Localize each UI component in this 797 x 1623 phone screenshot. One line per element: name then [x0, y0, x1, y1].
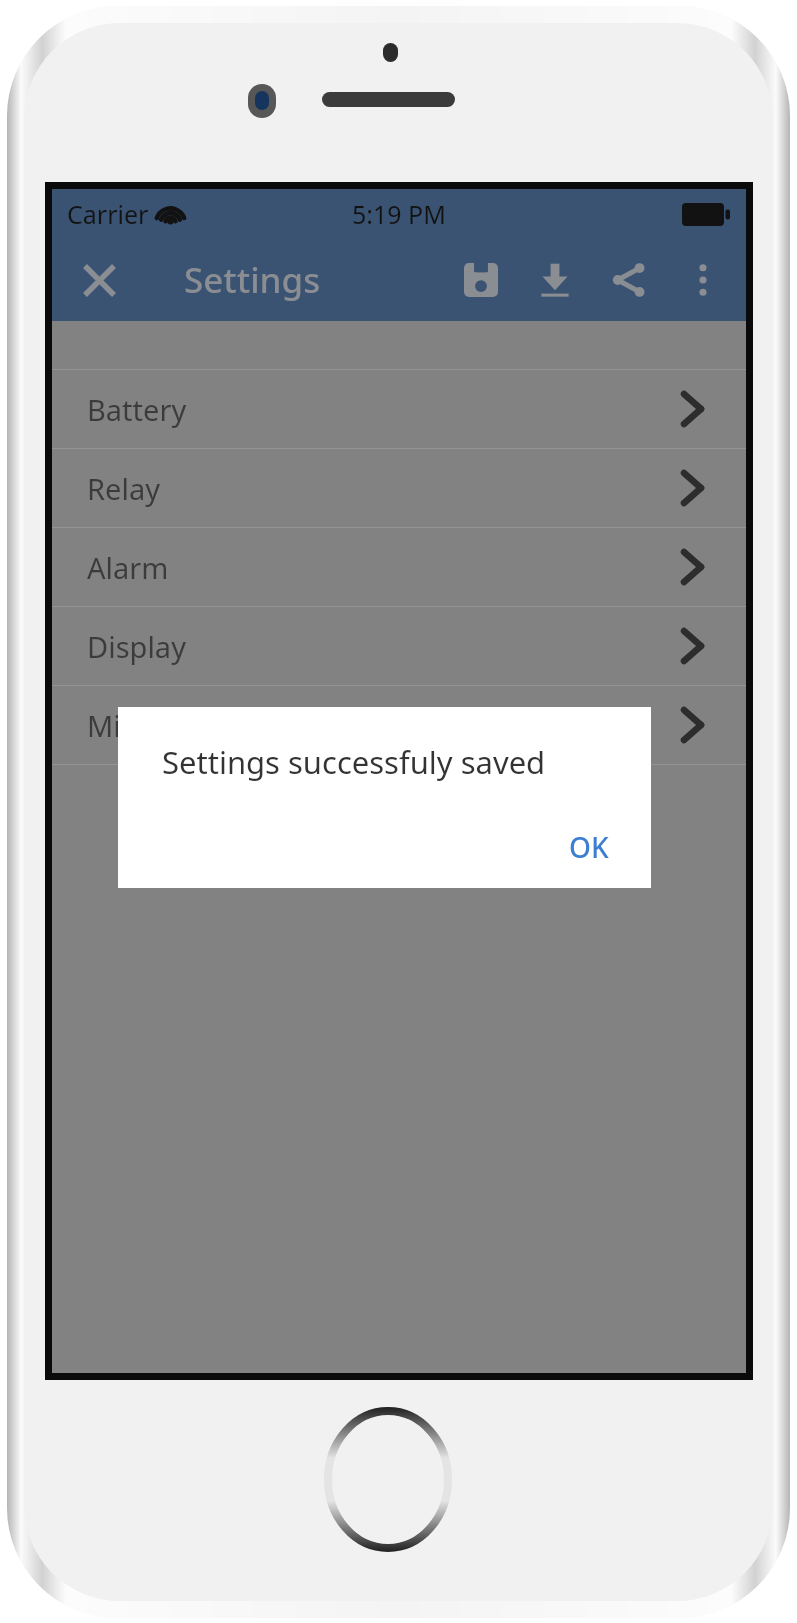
button[interactable]: Share: [592, 239, 666, 321]
staticText: Settings: [184, 256, 321, 304]
staticText: Settings successfuly saved: [162, 741, 546, 783]
button[interactable]: Battery: [52, 370, 746, 448]
staticText: Alarm: [87, 548, 169, 587]
staticText: Battery: [87, 390, 187, 429]
button[interactable]: OK: [547, 816, 631, 878]
button[interactable]: Relay: [52, 449, 746, 527]
staticText: Misc: [87, 706, 149, 745]
staticText: Relay: [87, 469, 160, 508]
staticText: 5:19 PM: [352, 197, 446, 231]
staticText: OK: [569, 828, 609, 866]
staticText: Carrier: [67, 197, 149, 231]
button[interactable]: Display: [52, 607, 746, 685]
button[interactable]: Misc: [52, 686, 746, 764]
button[interactable]: Alarm: [52, 528, 746, 606]
button[interactable]: Close: [68, 239, 130, 321]
staticText: Display: [87, 627, 186, 666]
button[interactable]: Save: [444, 239, 518, 321]
button[interactable]: Download: [518, 239, 592, 321]
button[interactable]: More options: [666, 239, 740, 321]
